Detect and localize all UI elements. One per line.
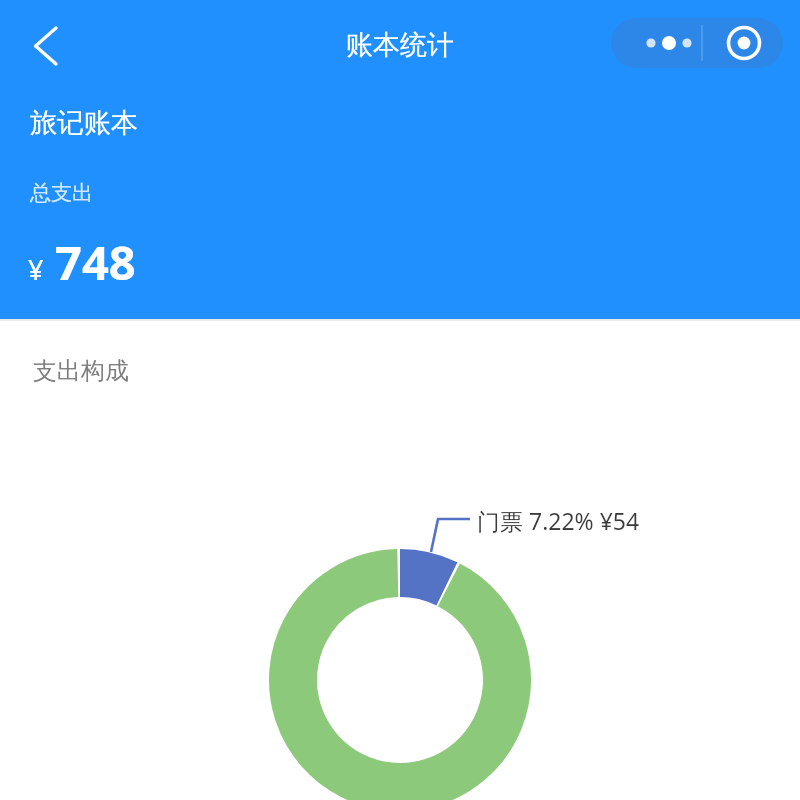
staticText: 748: [55, 230, 136, 294]
button[interactable]: Mini program menu: [611, 18, 783, 68]
staticText: 旅记账本: [30, 106, 138, 140]
staticText: 支出构成: [33, 356, 129, 386]
button[interactable]: Back: [14, 16, 74, 76]
staticText: ¥: [28, 251, 44, 288]
staticText: 总支出: [30, 180, 93, 206]
staticText: 门票 7.22% ¥54: [477, 505, 640, 536]
staticText: 账本统计: [0, 28, 800, 62]
